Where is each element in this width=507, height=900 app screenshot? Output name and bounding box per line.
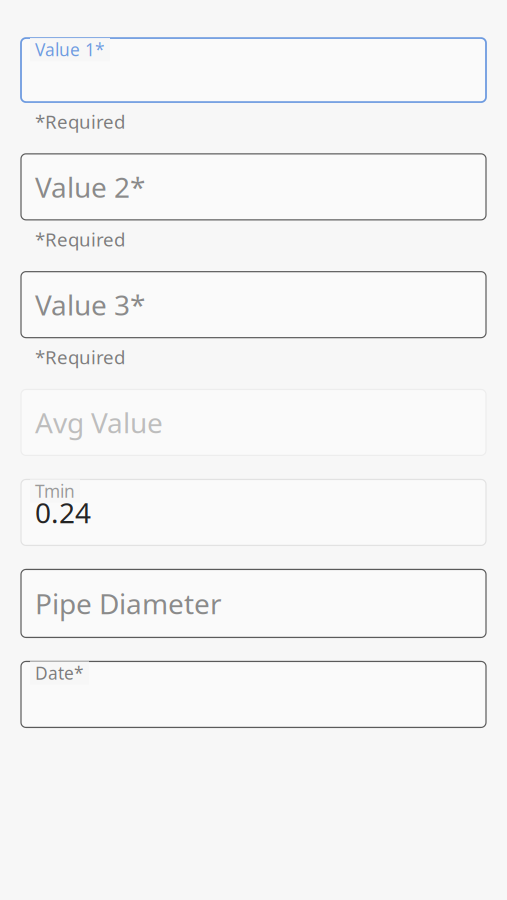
button[interactable]: 0.24 [0, 479, 507, 545]
staticText: Value 3* [35, 286, 145, 323]
staticText: *Required [35, 227, 125, 252]
staticText: 0.24 [35, 494, 91, 531]
button[interactable]: Value 1* [0, 38, 507, 102]
button[interactable]: Date* [0, 661, 507, 727]
button[interactable]: Value 3* [0, 272, 507, 338]
staticText: *Required [35, 345, 125, 369]
staticText: Pipe Diameter [35, 585, 222, 622]
staticText: Date* [35, 661, 84, 684]
staticText: Value 1* [35, 38, 105, 61]
staticText: *Required [35, 109, 125, 134]
staticText: Avg Value [35, 404, 163, 441]
staticText: Tmin [35, 479, 75, 502]
button[interactable]: Pipe Diameter [0, 569, 507, 637]
button[interactable]: Avg Value [0, 389, 507, 455]
button[interactable]: Value 2* [0, 154, 507, 220]
staticText: Value 2* [35, 168, 145, 205]
